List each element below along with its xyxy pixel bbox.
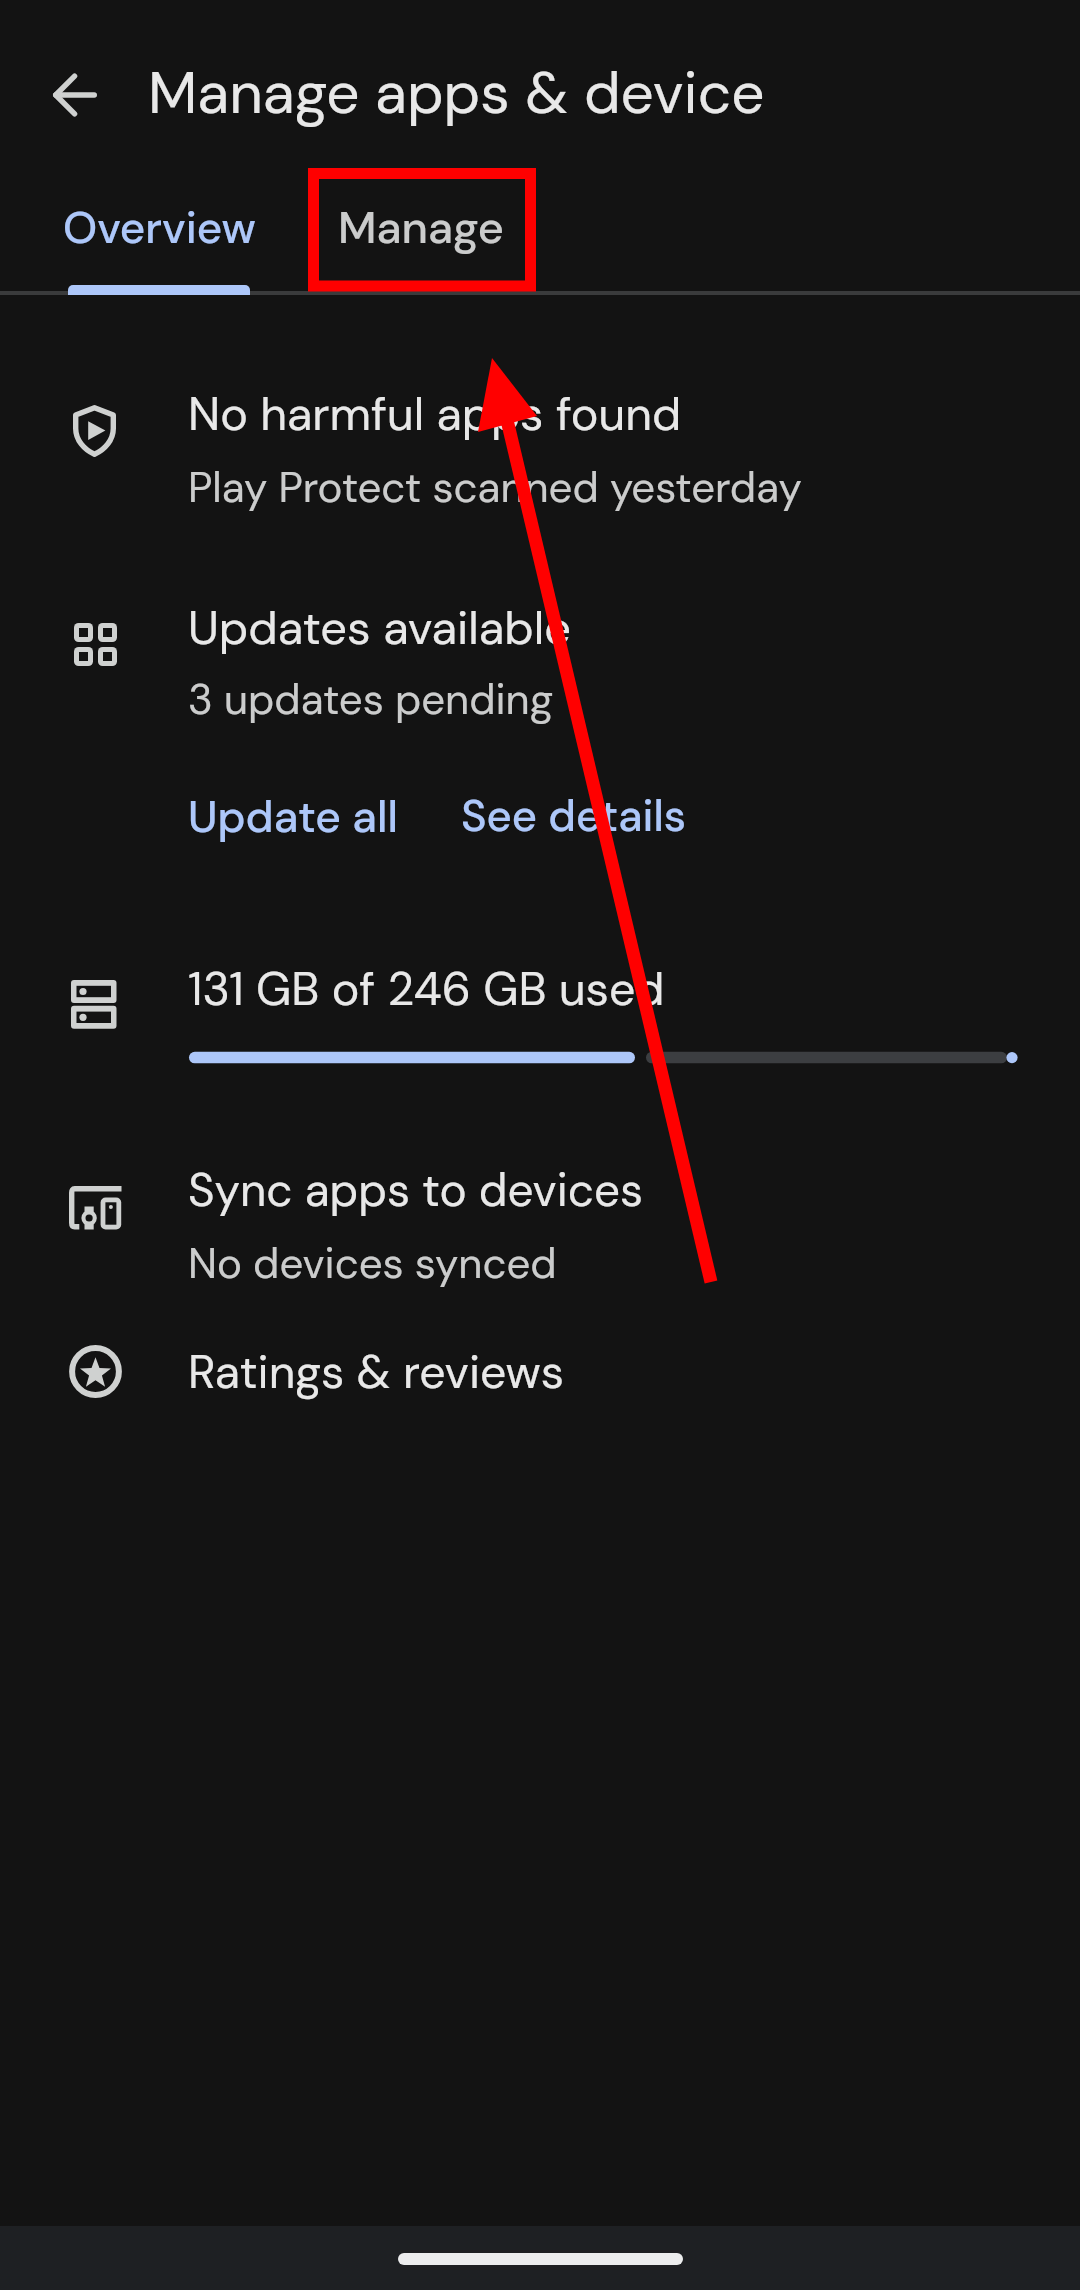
button[interactable]: 131 GB of 246 GB used [0, 930, 1080, 1100]
button[interactable]: Updates available [0, 560, 1080, 750]
staticText: No harmful apps found [188, 384, 682, 445]
staticText: Play Protect scanned yesterday [188, 460, 802, 515]
staticText: See details [461, 788, 687, 845]
button[interactable]: Update all [172, 778, 410, 858]
button[interactable]: Manage [318, 160, 628, 295]
staticText: Update all [188, 788, 398, 846]
staticText: 3 updates pending [188, 672, 554, 727]
button[interactable]: Back [33, 53, 117, 137]
staticText: 131 GB of 246 GB used [188, 959, 665, 1020]
staticText: Ratings & reviews [188, 1342, 564, 1402]
staticText: Overview [63, 199, 256, 256]
button[interactable]: See details [445, 778, 699, 858]
staticText: Sync apps to devices [188, 1161, 643, 1221]
staticText: Manage [338, 198, 504, 257]
button[interactable]: Sync apps to devices [0, 1125, 1080, 1313]
button[interactable]: Ratings & reviews [0, 1318, 1080, 1456]
staticText: No devices synced [188, 1236, 557, 1291]
staticText: Manage apps & device [148, 55, 765, 131]
staticText: Updates available [188, 597, 571, 658]
button[interactable]: Overview [0, 160, 318, 295]
button[interactable]: No harmful apps found [0, 350, 1080, 538]
